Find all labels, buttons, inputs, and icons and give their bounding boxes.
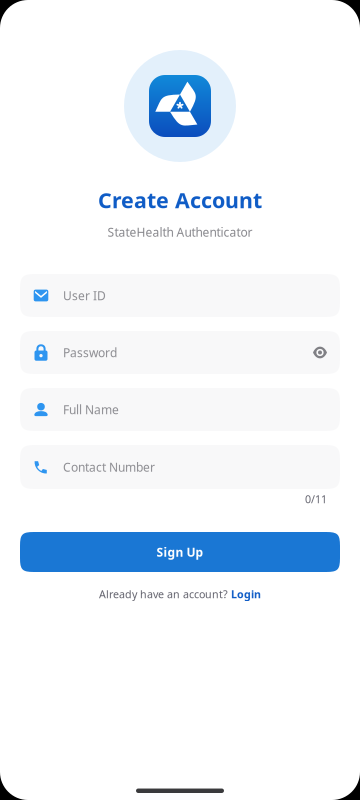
staticText: Password [63, 344, 117, 360]
staticText: Contact Number [63, 459, 155, 475]
staticText: Already have an account? [99, 587, 231, 601]
staticText: StateHealth Authenticator [107, 224, 252, 240]
staticText: Full Name [63, 401, 119, 417]
button[interactable]: Password [20, 331, 340, 374]
button[interactable]: Login [231, 587, 261, 601]
button[interactable]: Sign Up [20, 532, 340, 572]
staticText: Create Account [98, 186, 262, 214]
staticText: Sign Up [156, 544, 203, 560]
button[interactable]: User ID [20, 274, 340, 317]
button[interactable]: Full Name [20, 388, 340, 431]
staticText: User ID [63, 287, 106, 303]
staticText: 0/11 [305, 492, 327, 506]
button[interactable]: Contact Number [20, 445, 340, 489]
staticText: Login [231, 587, 261, 601]
